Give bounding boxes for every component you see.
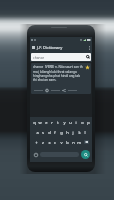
staticText: u [69,120,72,125]
button[interactable]: Navigation menu [30,43,92,52]
staticText: f [54,130,56,135]
button[interactable]: i [73,117,79,127]
button[interactable]: s [40,127,46,137]
button[interactable]: chance (VERB) n. Năo saurt san th mai, b… [31,63,91,94]
button[interactable]: a [34,127,40,137]
button[interactable]: l [82,127,88,137]
staticText: m [77,140,81,145]
button[interactable]: y [61,117,67,127]
button[interactable]: chance [31,53,91,61]
button[interactable]: e [43,117,49,127]
staticText: i [75,120,77,125]
button[interactable]: Copy [50,87,61,94]
staticText: J.F. Dictionary [37,45,63,50]
staticText: r [51,120,53,125]
button[interactable]: v [58,137,64,147]
staticText: g [60,130,63,135]
button[interactable]: m [76,137,82,147]
staticText: l [84,130,86,135]
other: More options [89,46,90,50]
staticText: chance [33,55,45,60]
button[interactable]: j [70,127,76,137]
button[interactable]: u [67,117,73,127]
staticText: h [66,130,69,135]
staticText: a [36,130,39,135]
button[interactable]: Listen [33,87,44,94]
button[interactable]: x [46,137,52,147]
staticText: chance (VERB) n. Năo saurt san th mai, b… [33,65,84,81]
button[interactable]: k [76,127,82,137]
button[interactable]: f [52,127,58,137]
button[interactable]: b [64,137,70,147]
button[interactable]: Pronounce [44,87,50,94]
button[interactable]: Shift [32,137,40,147]
staticText: d [48,130,51,135]
button[interactable]: d [46,127,52,137]
staticText: w [38,120,42,125]
button[interactable]: t [55,117,61,127]
staticText: n [72,140,75,145]
staticText: b [66,140,69,145]
button[interactable]: n [70,137,76,147]
button[interactable]: Share [61,87,67,94]
staticText: t [57,120,59,125]
button[interactable]: p [85,117,91,127]
staticText: q [33,120,36,125]
staticText: c [54,140,56,145]
button[interactable]: h [64,127,70,137]
button[interactable]: o [79,117,85,127]
staticText: y [63,120,66,125]
button[interactable]: c [52,137,58,147]
staticText: j [72,130,74,135]
staticText: k [78,130,81,135]
button[interactable]: Backspace [82,137,90,147]
staticText: o [81,120,84,125]
staticText: v [60,140,63,145]
button[interactable]: g [58,127,64,137]
staticText: x [48,140,51,145]
staticText: z [42,140,44,145]
button[interactable]: r [49,117,55,127]
staticText: p [87,120,90,125]
button[interactable]: z [40,137,46,147]
button[interactable]: w [37,117,43,127]
button[interactable]: More [67,87,78,94]
staticText: e [45,120,48,125]
button[interactable]: q [31,117,37,127]
staticText: s [42,130,44,135]
button[interactable]: Emoji [32,151,39,158]
other: Search [86,55,90,59]
other: Add to favorites [85,65,90,70]
button[interactable]: Search [81,150,90,159]
